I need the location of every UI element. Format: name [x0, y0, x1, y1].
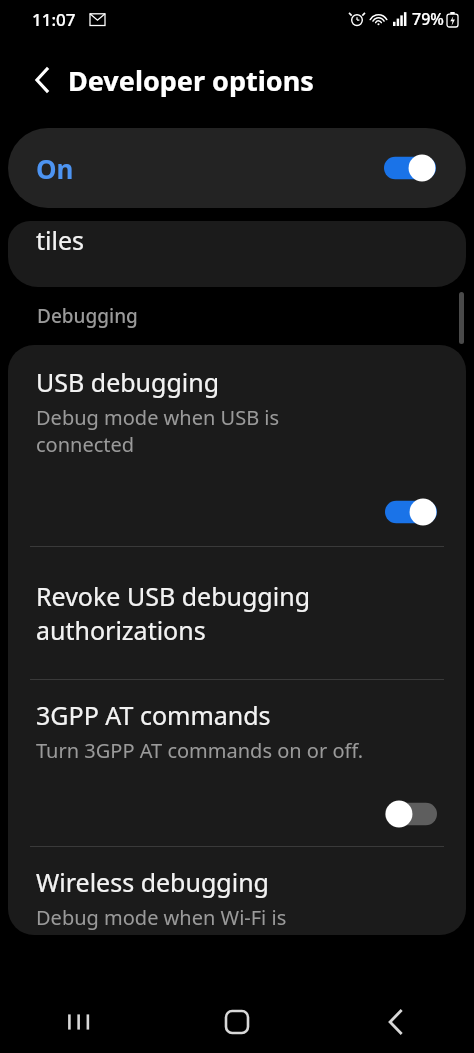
staticText: tiles — [36, 223, 85, 257]
staticText: Wireless debugging — [36, 865, 269, 899]
button[interactable]: 3GPP AT commands — [8, 680, 466, 846]
staticText: USB debugging — [36, 365, 220, 399]
button[interactable]: Toggle on — [384, 154, 436, 182]
button[interactable]: USB debugging — [8, 345, 466, 546]
button[interactable]: tiles — [8, 221, 466, 287]
staticText: 11:07 — [32, 8, 76, 31]
staticText: 3GPP AT commands — [36, 698, 271, 732]
button[interactable]: Home — [158, 991, 316, 1053]
button[interactable]: Toggle on — [385, 498, 437, 526]
staticText: Debug mode when Wi-Fi is — [36, 904, 287, 931]
staticText: Debugging — [37, 303, 138, 329]
staticText: On — [36, 151, 74, 186]
button[interactable]: Revoke USB debugging authorizations — [8, 547, 466, 679]
staticText: Developer options — [68, 62, 314, 99]
button[interactable]: Toggle off — [385, 800, 437, 828]
button[interactable]: On — [8, 128, 466, 208]
button[interactable]: Back — [22, 60, 62, 100]
staticText: 79% — [412, 8, 444, 30]
staticText: Turn 3GPP AT commands on or off. — [36, 737, 364, 764]
button[interactable]: Back — [316, 991, 474, 1053]
button[interactable]: Recent apps — [0, 991, 158, 1053]
staticText: Debug mode when USB is connected — [36, 404, 280, 458]
staticText: Revoke USB debugging authorizations — [36, 579, 311, 647]
button[interactable]: Wireless debugging — [8, 847, 466, 935]
